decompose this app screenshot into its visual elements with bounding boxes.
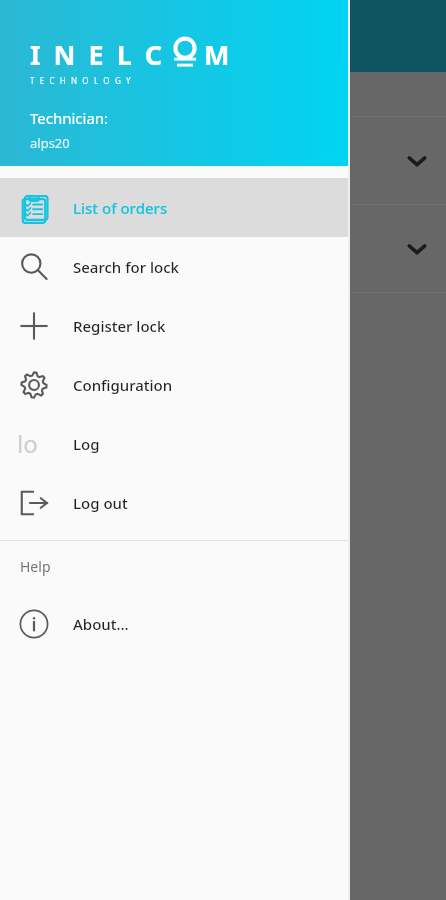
staticText: Technician:	[30, 108, 109, 128]
staticText: I N E L C	[30, 36, 166, 73]
staticText: About...	[73, 614, 129, 634]
staticText: alps20	[30, 134, 70, 152]
button[interactable]: List of orders	[0, 178, 348, 237]
button[interactable]: Log out	[0, 473, 348, 532]
staticText: Help	[20, 557, 51, 576]
staticText: T E C H N O L O G Y	[30, 75, 133, 86]
button[interactable]: Expand	[404, 236, 430, 262]
button[interactable]: About...	[0, 594, 348, 653]
staticText: Search for lock	[73, 257, 179, 277]
staticText: Register lock	[73, 316, 166, 336]
staticText: Log	[73, 434, 100, 454]
button[interactable]: Configuration	[0, 355, 348, 414]
button[interactable]: log	[0, 414, 348, 473]
staticText: Log out	[73, 493, 128, 513]
button[interactable]: Expand	[404, 148, 430, 174]
staticText: log	[17, 427, 51, 461]
staticText: List of orders	[73, 198, 168, 218]
staticText: M	[204, 36, 233, 73]
staticText: Configuration	[73, 375, 173, 395]
button[interactable]: Register lock	[0, 296, 348, 355]
button[interactable]: Search for lock	[0, 237, 348, 296]
